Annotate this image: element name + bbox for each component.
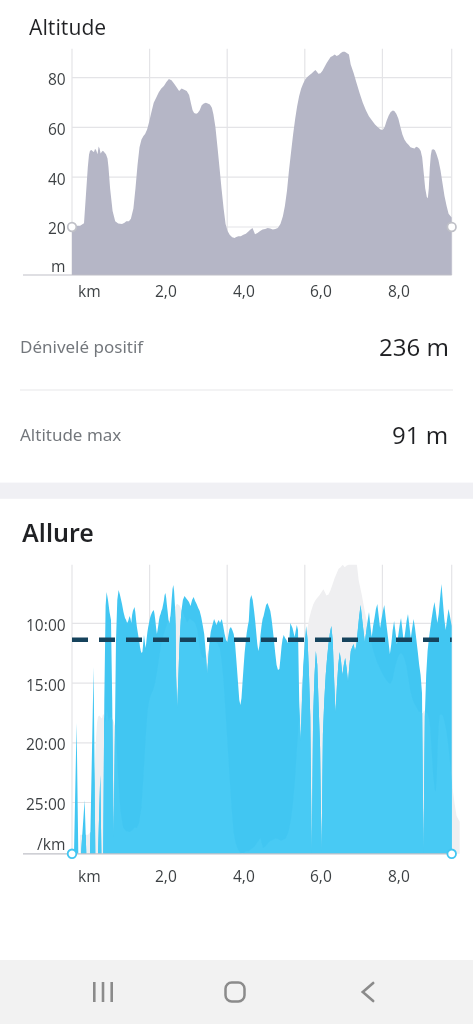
staticText: 15:00 bbox=[26, 674, 66, 695]
staticText: 60 bbox=[48, 118, 66, 139]
staticText: 91 m bbox=[392, 418, 449, 451]
staticText: Dénivelé positif bbox=[20, 335, 144, 358]
button[interactable]: Dénivelé positif bbox=[0, 303, 473, 390]
staticText: km bbox=[78, 865, 101, 886]
staticText: 20 bbox=[48, 217, 66, 238]
staticText: 8,0 bbox=[388, 865, 410, 886]
button[interactable]: Altitude max bbox=[0, 391, 473, 478]
staticText: 8,0 bbox=[388, 280, 410, 301]
staticText: 80 bbox=[48, 68, 66, 89]
staticText: 10:00 bbox=[26, 614, 66, 635]
staticText: Altitude max bbox=[20, 423, 122, 446]
staticText: 6,0 bbox=[310, 280, 332, 301]
staticText: 236 m bbox=[379, 330, 449, 363]
staticText: km bbox=[78, 280, 101, 301]
staticText: 4,0 bbox=[233, 865, 255, 886]
staticText: Allure bbox=[22, 515, 94, 549]
staticText: 20:00 bbox=[26, 733, 66, 754]
staticText: 6,0 bbox=[310, 865, 332, 886]
button[interactable]: Back bbox=[346, 960, 390, 1024]
staticText: 2,0 bbox=[155, 280, 177, 301]
staticText: Altitude bbox=[29, 13, 107, 42]
staticText: 40 bbox=[48, 168, 66, 189]
staticText: 4,0 bbox=[233, 280, 255, 301]
button[interactable]: Recent apps bbox=[81, 960, 125, 1024]
staticText: 2,0 bbox=[155, 865, 177, 886]
button[interactable]: Home bbox=[213, 960, 257, 1024]
staticText: 25:00 bbox=[26, 793, 66, 814]
staticText: /km bbox=[37, 833, 66, 854]
staticText: m bbox=[51, 255, 66, 276]
